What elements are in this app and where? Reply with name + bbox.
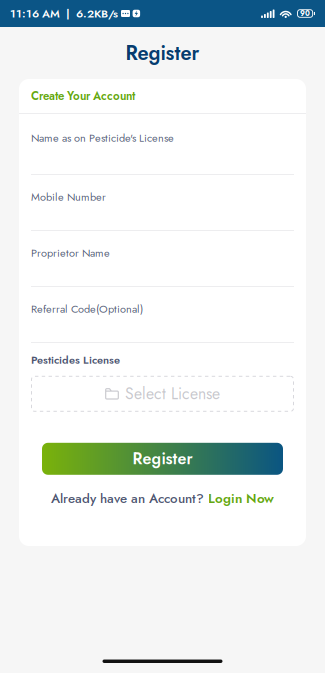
staticText: Register <box>125 38 199 67</box>
button[interactable]: Register <box>42 443 283 475</box>
staticText: Referral Code(Optional) <box>31 301 143 317</box>
button[interactable]: Mobile Number <box>19 175 306 231</box>
staticText: 90 <box>300 8 310 19</box>
staticText: Name as on Pesticide's License <box>31 130 174 146</box>
button[interactable]: Login Now <box>208 489 274 508</box>
staticText: Already have an Account? <box>51 489 204 508</box>
button[interactable]: Select License <box>31 376 294 412</box>
staticText: Pesticides License <box>31 352 120 368</box>
staticText: Mobile Number <box>31 189 106 205</box>
button[interactable]: Referral Code(Optional) <box>19 287 306 343</box>
staticText: Select License <box>125 382 220 405</box>
staticText: Proprietor Name <box>31 245 110 261</box>
button[interactable]: Proprietor Name <box>19 231 306 287</box>
staticText: Login Now <box>208 489 274 508</box>
staticText: 11:16 AM | 6.2KB/s <box>10 5 118 22</box>
button[interactable]: Name as on Pesticide's License <box>19 114 306 175</box>
staticText: Register <box>132 447 192 470</box>
staticText: Create Your Account <box>31 88 135 104</box>
